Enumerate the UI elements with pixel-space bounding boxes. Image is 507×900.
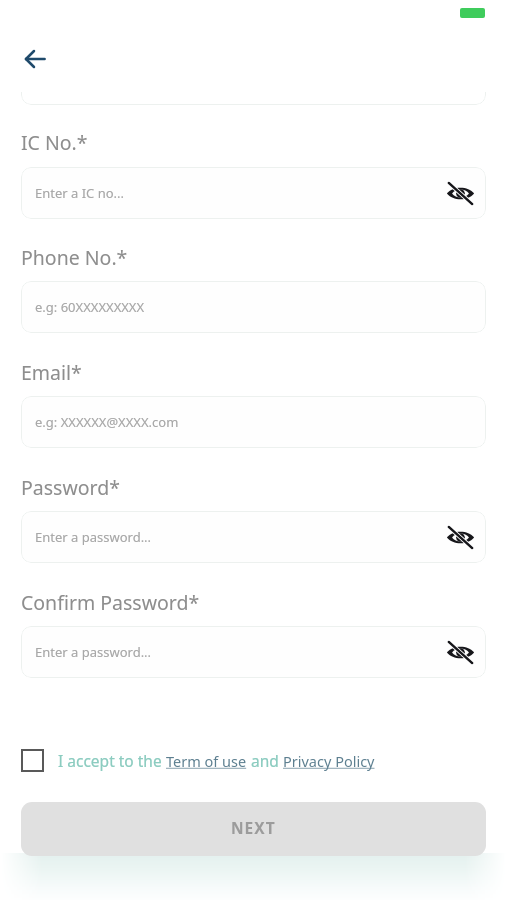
button[interactable]: Enter a IC no... — [21, 167, 486, 219]
staticText: Enter a password... — [35, 528, 152, 546]
button[interactable]: I accept to the — [21, 746, 375, 774]
button[interactable]: Enter a password... — [21, 511, 486, 563]
staticText: Password* — [21, 474, 120, 501]
button[interactable]: Back — [15, 39, 55, 79]
staticText: I accept to the — [58, 750, 166, 771]
button[interactable]: NEXT — [21, 802, 486, 856]
staticText: Enter a IC no... — [35, 184, 125, 202]
staticText: e.g: 60XXXXXXXXX — [35, 298, 145, 316]
button[interactable]: Toggle password visibility — [441, 633, 479, 671]
staticText: Phone No.* — [21, 244, 128, 271]
staticText: Enter a password... — [35, 643, 152, 661]
button[interactable]: Toggle password visibility — [441, 174, 479, 212]
staticText: e.g: XXXXXX@XXXX.com — [35, 413, 179, 431]
staticText: Privacy Policy — [283, 751, 375, 771]
staticText: IC No.* — [21, 129, 88, 156]
button[interactable]: Enter a password... — [21, 626, 486, 678]
button[interactable]: e.g: XXXXXX@XXXX.com — [21, 396, 486, 448]
staticText: NEXT — [231, 817, 276, 838]
staticText: Confirm Password* — [21, 589, 200, 616]
staticText: and — [247, 750, 283, 771]
staticText: Term of use — [166, 751, 247, 771]
button[interactable]: e.g: 60XXXXXXXXX — [21, 281, 486, 333]
staticText: Email* — [21, 359, 82, 386]
button[interactable]: Toggle password visibility — [441, 518, 479, 556]
